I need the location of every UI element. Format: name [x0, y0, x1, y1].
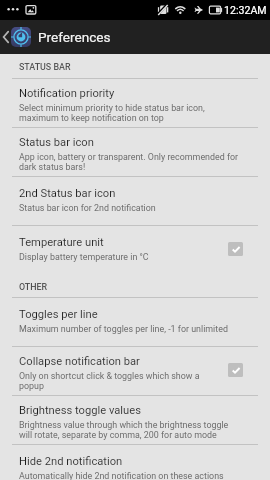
staticText: Collapse notification bar: [19, 355, 140, 368]
staticText: 2nd Status bar icon: [19, 187, 116, 200]
staticText: Select minimum priority to hide status b…: [19, 103, 240, 123]
button[interactable]: Brightness toggle values: [0, 396, 270, 444]
staticText: Hide 2nd notification: [19, 455, 123, 468]
staticText: Preferences: [38, 29, 111, 45]
staticText: 12:32AM: [224, 4, 267, 16]
staticText: Brightness value through which the brigh…: [19, 420, 240, 440]
staticText: Automatically hide 2nd notification on t…: [19, 471, 224, 480]
staticText: STATUS BAR: [19, 62, 71, 72]
staticText: Toggles per line: [19, 308, 98, 321]
staticText: App icon, battery or transparent. Only r…: [19, 152, 240, 172]
staticText: Brightness toggle values: [19, 404, 141, 417]
button[interactable]: Toggles per line: [0, 298, 270, 346]
staticText: Temperature unit: [19, 236, 104, 249]
staticText: Maximum number of toggles per line, -1 f…: [19, 324, 228, 334]
button[interactable]: Notification priority: [0, 79, 270, 127]
button[interactable]: 2nd Status bar icon: [0, 177, 270, 225]
staticText: Display battery temperature in °C: [19, 252, 149, 262]
staticText: OTHER: [19, 282, 48, 292]
button[interactable]: Hide 2nd notification: [0, 445, 270, 480]
staticText: Only on shortcut click & toggles which s…: [19, 371, 220, 391]
staticText: Status bar icon for 2nd notification: [19, 203, 156, 213]
staticText: Status bar icon: [19, 136, 94, 149]
button[interactable]: Collapse notification bar: [0, 347, 270, 395]
button[interactable]: Temperature unit: [0, 226, 270, 274]
button[interactable]: Status bar icon: [0, 128, 270, 176]
staticText: Notification priority: [19, 87, 115, 100]
button[interactable]: Navigate up: [0, 20, 11, 54]
